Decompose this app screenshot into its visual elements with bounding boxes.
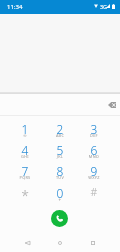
staticText: ABC: [43, 133, 77, 141]
staticText: #: [77, 185, 111, 199]
button[interactable]: 2: [43, 122, 77, 143]
button[interactable]: *: [8, 186, 42, 207]
staticText: JKL: [43, 154, 77, 162]
button[interactable]: 0: [43, 186, 77, 207]
staticText: ∞: [8, 133, 42, 141]
button[interactable]: 7: [8, 164, 42, 185]
button[interactable]: 3: [77, 122, 111, 143]
staticText: 5: [43, 142, 77, 156]
staticText: 1: [8, 121, 42, 135]
staticText: PQRS: [8, 175, 42, 183]
staticText: GHI: [8, 154, 42, 162]
button[interactable]: 9: [77, 164, 111, 185]
staticText: TUV: [43, 175, 77, 183]
button[interactable]: #: [77, 186, 111, 207]
button[interactable]: 4: [8, 143, 42, 164]
staticText: 3G: [100, 3, 108, 10]
button[interactable]: 1: [8, 122, 42, 143]
button[interactable]: Home: [50, 233, 70, 252]
staticText: +: [43, 197, 77, 205]
staticText: 11:34: [7, 3, 23, 11]
staticText: 6: [77, 142, 111, 156]
staticText: MNO: [77, 154, 111, 162]
button[interactable]: 5: [43, 143, 77, 164]
staticText: 4: [8, 142, 42, 156]
button[interactable]: 8: [43, 164, 77, 185]
button[interactable]: 6: [77, 143, 111, 164]
staticText: 7: [8, 163, 42, 177]
staticText: DEF: [77, 133, 111, 141]
button[interactable]: Back: [17, 233, 37, 252]
staticText: 8: [43, 163, 77, 177]
staticText: WXYZ: [77, 175, 111, 183]
button[interactable]: Call: [51, 210, 68, 227]
staticText: 3: [77, 121, 111, 135]
staticText: 2: [43, 121, 77, 135]
button[interactable]: Backspace: [103, 96, 120, 114]
button[interactable]: Recents: [83, 233, 103, 252]
staticText: 0: [43, 185, 77, 199]
staticText: *: [8, 186, 42, 200]
staticText: 9: [77, 163, 111, 177]
